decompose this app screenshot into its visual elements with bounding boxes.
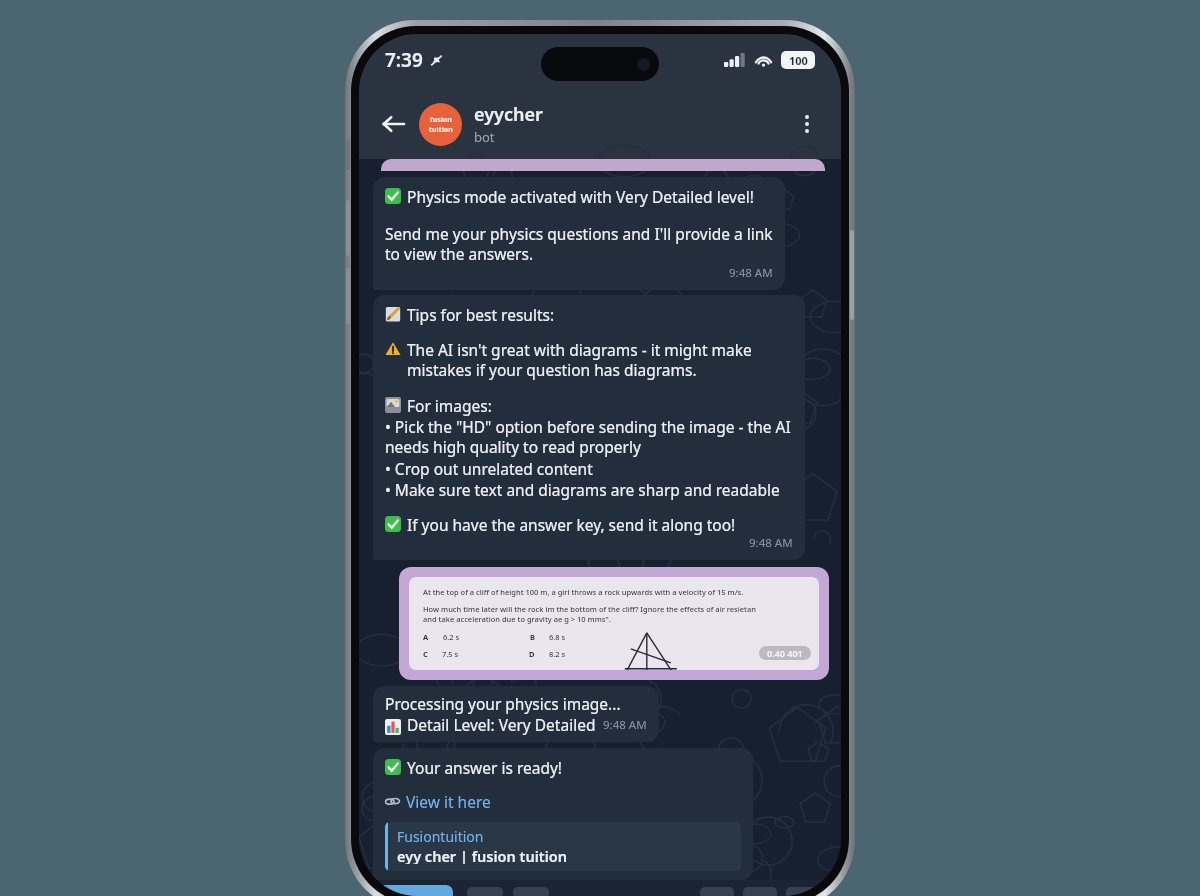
button[interactable]: Primary action [371,885,453,896]
staticText: • Make sure text and diagrams are sharp … [385,479,780,500]
button[interactable]: Quick action [467,887,503,896]
staticText: bot [474,128,495,146]
staticText: D [529,649,535,659]
staticText: and take acceleration due to gravity ae … [423,614,611,624]
staticText: eyy cher | fusion tuition [397,846,567,864]
staticText: 9:48 AM [749,535,793,551]
staticText: 8.2 s [549,649,566,659]
button[interactable]: More options [787,104,827,144]
button[interactable] [381,159,825,171]
staticText: 100 [789,53,808,68]
staticText: • Crop out unrelated content [385,458,593,479]
staticText: • Pick the "HD" option before sending th… [385,416,793,458]
staticText: eyycher [474,102,543,127]
staticText: Fusiontuition [397,827,484,846]
button[interactable]: Processing your physics image... [373,686,659,742]
staticText: 9:48 AM [603,717,647,733]
staticText: View it here [406,791,491,812]
button[interactable]: View it here [385,791,491,812]
staticText: Send me your physics questions and I'll … [385,223,773,265]
staticText: At the top of a cliff of height 100 m, a… [423,587,744,597]
staticText: Your answer is ready! [407,757,563,778]
staticText: 7.5 s [442,649,459,659]
staticText: Tips for best results: [407,304,555,325]
staticText: Processing your physics image... [385,693,621,714]
staticText: 9:48 AM [729,265,773,281]
staticText: 7:39 [385,47,423,73]
staticText: 0.40 401 [767,647,803,659]
button[interactable]: Fusiontuition [385,822,741,871]
staticText: fusion [430,115,452,125]
staticText: Physics mode activated with Very Detaile… [407,186,754,207]
staticText: How much time later will the rock im the… [423,604,756,614]
button[interactable]: Your answer is ready! [373,748,753,880]
staticText: Detail Level: Very Detailed [407,714,596,735]
button[interactable]: Tips for best results: [373,295,805,560]
button[interactable]: Quick action [786,887,820,896]
staticText: If you have the answer key, send it alon… [407,514,736,535]
staticText: C [423,649,428,659]
staticText: tuition [429,125,453,135]
staticText: B [530,632,535,642]
staticText: 6.2 s [443,632,460,642]
button[interactable]: Physics mode activated with Very Detaile… [373,177,785,290]
button[interactable]: Photo of physics question [399,567,829,680]
button[interactable]: fusion [419,102,787,146]
staticText: For images: [407,395,492,416]
button[interactable]: Back [373,104,413,144]
staticText: 6.8 s [549,632,566,642]
button[interactable]: Quick action [743,887,777,896]
button[interactable]: Quick action [700,887,734,896]
staticText: A [423,632,429,642]
staticText: The AI isn't great with diagrams - it mi… [407,339,793,381]
button[interactable]: Quick action [513,887,549,896]
